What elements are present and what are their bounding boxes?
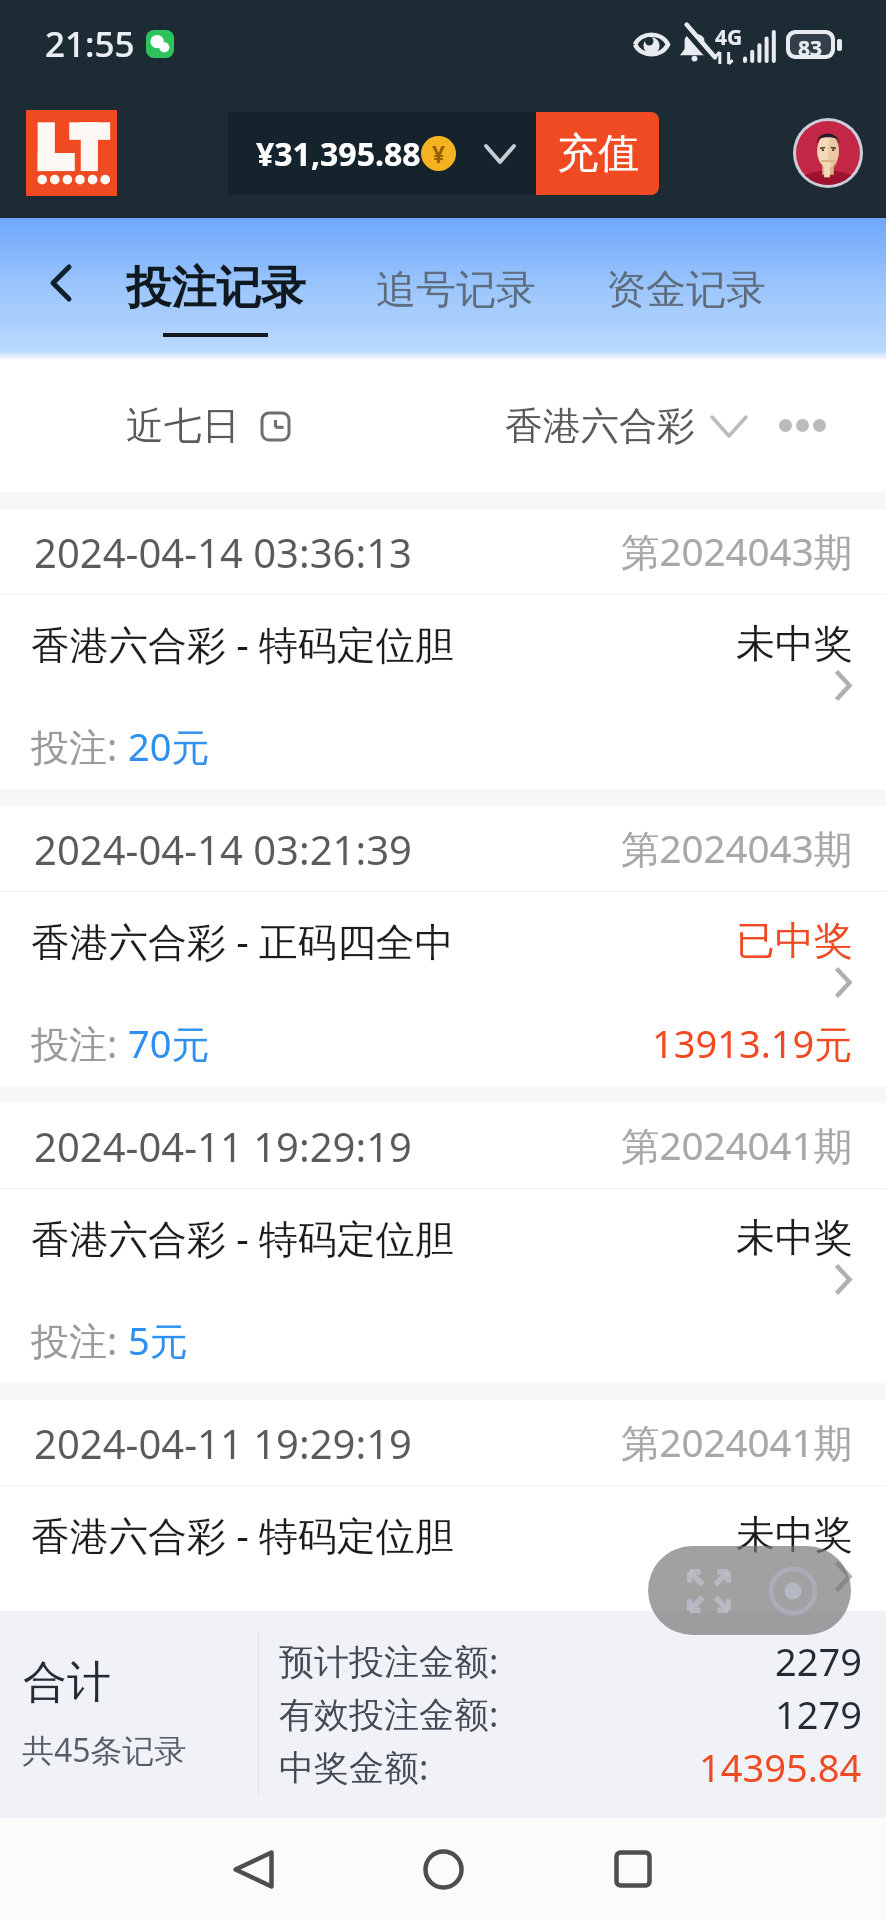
staticText: 香港六合彩 — [505, 402, 695, 450]
button[interactable]: 近七日 — [126, 402, 289, 450]
button[interactable]: Back — [22, 236, 98, 312]
staticText: 香港六合彩 - 特码定位胆 — [31, 1508, 454, 1561]
button[interactable]: 资金记录 — [606, 264, 766, 314]
staticText: 香港六合彩 - 特码定位胆 — [31, 617, 454, 670]
staticText: 共45条记录 — [22, 1728, 187, 1772]
staticText: 第2024043期 — [621, 822, 853, 875]
staticText: 20元 — [128, 720, 210, 772]
button[interactable]: 充值 — [536, 112, 659, 195]
button[interactable]: Screen recorder — [648, 1546, 851, 1635]
staticText: 预计投注金额: — [279, 1637, 499, 1685]
staticText: 资金记录 — [606, 264, 766, 314]
staticText: 合计 — [23, 1655, 111, 1710]
staticText: 第2024041期 — [621, 1119, 853, 1172]
staticText: 未中奖 — [736, 1510, 853, 1559]
staticText: 投注: — [31, 1314, 128, 1366]
button[interactable]: ¥31,395.88 — [228, 112, 536, 195]
button[interactable]: Home — [348, 1818, 538, 1920]
staticText: 有效投注金额: — [279, 1690, 499, 1738]
staticText: 近七日 — [126, 402, 240, 450]
button[interactable]: 香港六合彩 - 特码定位胆 — [0, 595, 886, 789]
button[interactable]: 追号记录 — [376, 264, 536, 314]
staticText: 70元 — [128, 1017, 210, 1069]
button[interactable]: Recent apps — [538, 1818, 728, 1920]
staticText: 13913.19元 — [652, 1017, 853, 1069]
staticText: 中奖金额: — [279, 1743, 429, 1791]
staticText: 充值 — [557, 128, 639, 180]
button[interactable]: 香港六合彩 - 正码四全中 — [0, 892, 886, 1086]
staticText: 2024-04-14 03:21:39 — [34, 822, 412, 876]
staticText: 2024-04-11 19:29:19 — [34, 1416, 412, 1470]
button[interactable]: 投注记录 — [126, 260, 306, 317]
button[interactable]: Back — [158, 1818, 348, 1920]
staticText: 投注: — [31, 1611, 128, 1663]
staticText: 投注: — [31, 1017, 128, 1069]
button[interactable]: 香港六合彩 — [505, 402, 746, 450]
button[interactable]: More options — [779, 419, 826, 432]
staticText: 香港六合彩 - 特码定位胆 — [31, 1211, 454, 1264]
staticText: 4G — [715, 23, 743, 52]
staticText: 83 — [798, 34, 823, 55]
staticText: 21:55 — [45, 20, 135, 68]
staticText: 第2024043期 — [621, 525, 853, 578]
staticText: ¥ — [432, 138, 446, 169]
staticText: 5元 — [128, 1314, 188, 1366]
button[interactable]: Profile avatar — [796, 121, 860, 185]
staticText: 未中奖 — [736, 619, 853, 668]
staticText: 2024-04-11 19:29:19 — [34, 1119, 412, 1173]
staticText: 香港六合彩 - 正码四全中 — [31, 914, 454, 967]
staticText: 追号记录 — [376, 264, 536, 314]
staticText: 投注: — [31, 720, 128, 772]
staticText: 已中奖 — [736, 916, 853, 965]
staticText: 未中奖 — [736, 1213, 853, 1262]
staticText: 1279 — [775, 1688, 862, 1740]
staticText: 2024-04-14 03:36:13 — [34, 525, 412, 579]
staticText: 14395.84 — [699, 1741, 862, 1793]
button[interactable]: 香港六合彩 - 特码定位胆 — [0, 1189, 886, 1383]
button[interactable]: Home logo — [26, 110, 117, 196]
staticText: 第2024041期 — [621, 1416, 853, 1469]
staticText: 投注记录 — [126, 260, 306, 317]
button[interactable]: 香港六合彩 - 特码定位胆 — [0, 1486, 886, 1680]
staticText: 2279 — [775, 1635, 862, 1687]
staticText: ¥31,395.88 — [256, 132, 421, 176]
